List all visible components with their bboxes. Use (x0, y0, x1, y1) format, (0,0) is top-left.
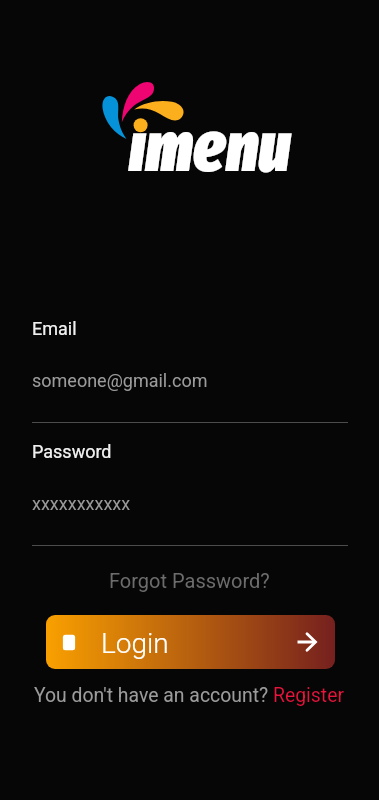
staticText: someone@gmail.com (32, 370, 208, 391)
button[interactable]: Register (273, 684, 345, 707)
staticText: Email (32, 318, 77, 339)
staticText: ımenu (129, 106, 291, 190)
staticText: Forgot Password? (109, 569, 270, 592)
staticText: Password (32, 441, 112, 462)
staticText: Login (101, 627, 169, 660)
button[interactable]: Login (46, 615, 335, 669)
button[interactable]: Forgot Password? (99, 566, 280, 595)
staticText: xxxxxxxxxxx (32, 493, 131, 514)
staticText: Register (273, 684, 345, 707)
staticText: You don't have an account? (34, 684, 273, 707)
